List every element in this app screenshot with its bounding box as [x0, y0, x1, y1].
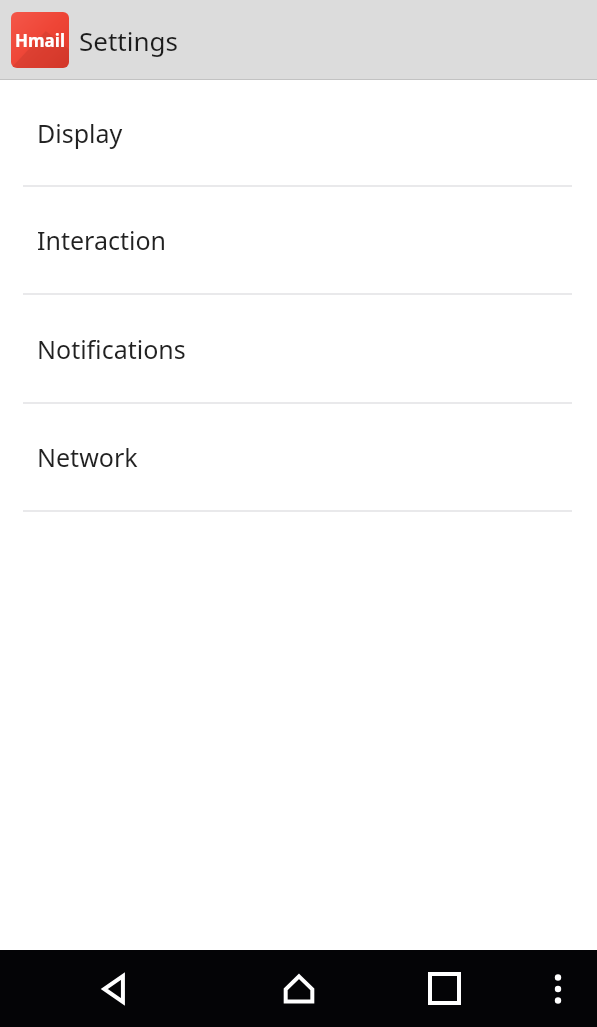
staticText: Notifications: [37, 332, 186, 366]
button[interactable]: Back: [0, 950, 229, 1027]
staticText: Hmail: [15, 29, 65, 52]
staticText: Display: [37, 116, 123, 150]
button[interactable]: Interaction: [0, 187, 597, 295]
button[interactable]: Notifications: [0, 295, 597, 404]
staticText: Network: [37, 440, 138, 474]
staticText: Interaction: [37, 223, 166, 257]
button[interactable]: Recent apps: [369, 950, 519, 1027]
button[interactable]: Home: [229, 950, 369, 1027]
staticText: Settings: [79, 23, 178, 58]
button[interactable]: Display: [0, 80, 597, 187]
button[interactable]: More options: [519, 950, 597, 1027]
button[interactable]: Network: [0, 404, 597, 512]
